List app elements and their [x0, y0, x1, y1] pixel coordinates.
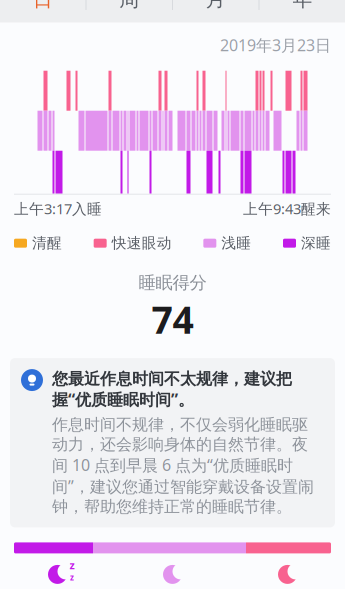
staticText: 清醒 — [32, 234, 62, 252]
button[interactable]: 周 — [86, 0, 172, 22]
staticText: 作息时间不规律，不仅会弱化睡眠驱动力，还会影响身体的自然节律。夜间 10 点到早… — [52, 415, 314, 516]
staticText: 74 — [151, 294, 193, 344]
staticText: 月 — [206, 0, 226, 12]
staticText: 上午3:17入睡 — [14, 199, 102, 218]
staticText: 快速眼动 — [112, 234, 172, 252]
staticText: 睡眠得分 — [138, 272, 206, 293]
staticText: 您最近作息时间不太规律，建议把握“优质睡眠时间”。 — [52, 369, 292, 410]
staticText: 日 — [33, 0, 53, 12]
staticText: 浅睡 — [221, 234, 251, 252]
button[interactable]: 年 — [259, 0, 345, 22]
staticText: 2019年3月23日 — [220, 34, 331, 56]
staticText: 上午9:43醒来 — [243, 199, 331, 218]
staticText: z — [69, 558, 74, 572]
staticText: z — [70, 572, 74, 583]
staticText: 年 — [292, 0, 312, 12]
staticText: 深睡 — [301, 234, 331, 252]
staticText: 周 — [119, 0, 139, 12]
button[interactable]: 日 — [0, 0, 85, 22]
button[interactable]: 月 — [173, 0, 258, 22]
